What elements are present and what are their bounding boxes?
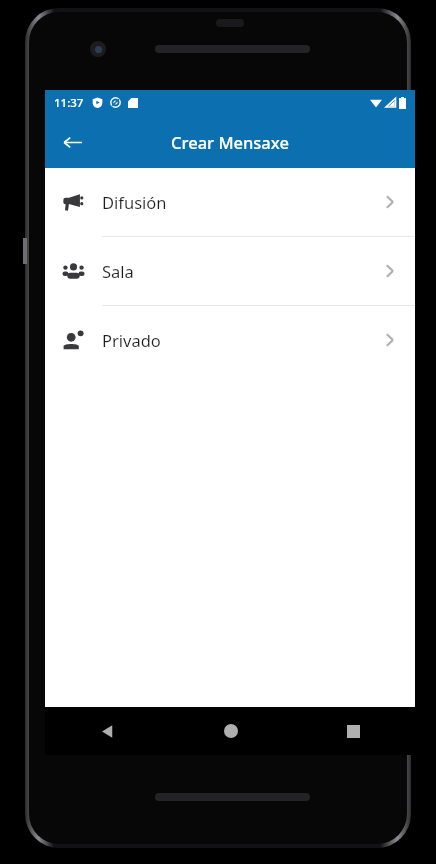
staticText: Difusión xyxy=(102,191,167,213)
button[interactable]: Home xyxy=(169,707,292,755)
button[interactable]: Back xyxy=(52,122,92,162)
staticText: Crear Mensaxe xyxy=(171,131,289,153)
staticText: Privado xyxy=(102,329,161,351)
staticText: Sala xyxy=(102,260,134,282)
button[interactable]: Sala xyxy=(45,237,415,305)
button[interactable]: Difusión xyxy=(45,168,415,236)
staticText: 11:37 xyxy=(54,95,84,111)
button[interactable]: Recents xyxy=(292,707,415,755)
button[interactable]: Privado xyxy=(45,306,415,374)
button[interactable]: Back xyxy=(45,707,169,755)
